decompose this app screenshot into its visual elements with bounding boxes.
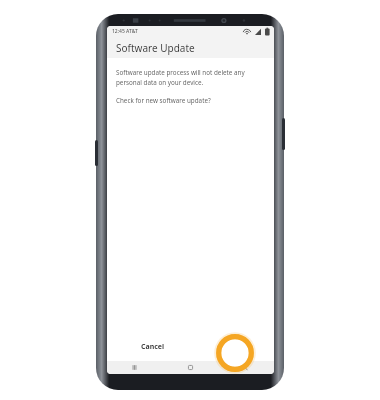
staticText: 12:45 AT&T bbox=[112, 28, 138, 35]
staticText: Cancel bbox=[141, 342, 165, 352]
button[interactable]: Recents bbox=[107, 361, 162, 374]
staticText: Check for new software update? bbox=[116, 96, 211, 105]
button[interactable]: Back bbox=[218, 361, 274, 374]
button[interactable]: Cancel bbox=[131, 337, 175, 357]
staticText: Software Update bbox=[116, 41, 195, 55]
button[interactable]: Home bbox=[162, 361, 218, 374]
staticText: Software update process will not delete … bbox=[116, 68, 265, 87]
button[interactable]: OK bbox=[219, 337, 250, 357]
